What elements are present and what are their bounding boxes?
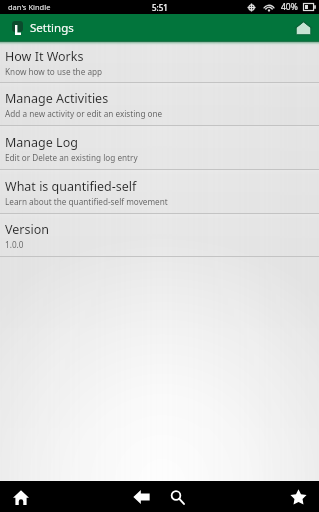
staticText: Learn about the quantified-self movement: [5, 196, 168, 207]
button[interactable]: Home: [291, 16, 315, 40]
staticText: What is quantified-self: [5, 178, 137, 195]
staticText: Know how to use the app: [5, 66, 103, 77]
staticText: dan's Kindle: [8, 2, 51, 12]
button[interactable]: Version: [0, 214, 319, 256]
button[interactable]: How It Works: [0, 42, 319, 82]
button[interactable]: Back: [128, 484, 154, 510]
staticText: Settings: [30, 20, 74, 36]
staticText: 1.0.0: [5, 239, 24, 250]
staticText: 40%: [281, 1, 298, 13]
button[interactable]: Manage Activities: [0, 83, 319, 125]
staticText: Version: [5, 221, 49, 238]
button[interactable]: Search: [164, 484, 190, 510]
button[interactable]: What is quantified-self: [0, 170, 319, 213]
button[interactable]: Home: [8, 484, 34, 510]
button[interactable]: Favorites: [285, 484, 311, 510]
staticText: 5:51: [152, 2, 168, 13]
button[interactable]: Manage Log: [0, 126, 319, 169]
staticText: Manage Log: [5, 134, 78, 151]
staticText: Add a new activity or edit an existing o…: [5, 108, 163, 119]
staticText: How It Works: [5, 48, 84, 65]
staticText: Manage Activities: [5, 90, 109, 107]
staticText: Edit or Delete an existing log entry: [5, 152, 138, 163]
